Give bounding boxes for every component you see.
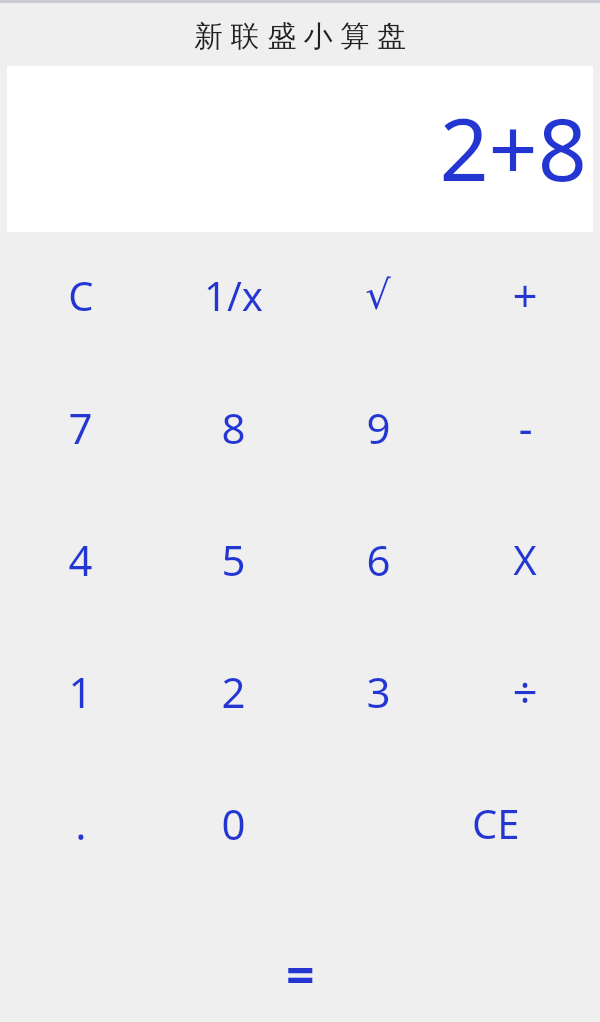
staticText: 3 [366,663,391,720]
staticText: 2+8 [439,89,587,206]
staticText: 5 [221,531,246,588]
button[interactable]: CE [450,791,600,855]
button[interactable]: 5 [161,527,306,591]
button[interactable]: 7 [0,395,161,459]
button[interactable]: 6 [306,527,450,591]
staticText: = [286,940,315,1008]
button[interactable]: 2+8 [7,66,593,232]
staticText: 9 [366,399,391,456]
button[interactable]: X [450,527,600,591]
button[interactable]: Minus [450,395,600,459]
staticText: 8 [221,399,246,456]
staticText: . [75,795,87,852]
staticText: 0 [221,795,246,852]
button[interactable]: 4 [0,527,161,591]
button[interactable]: 0 [161,791,306,855]
staticText: + [512,265,538,325]
staticText: 新 联 盛 小 算 盘 [194,15,406,55]
button[interactable]: 8 [161,395,306,459]
staticText: 4 [68,531,93,588]
staticText: 2 [221,663,246,720]
button[interactable]: 1/x [161,263,306,327]
staticText: 6 [366,531,391,588]
button[interactable]: Plus [450,263,600,327]
button[interactable]: Equals [220,940,380,1010]
button[interactable]: 9 [306,395,450,459]
button[interactable]: Square root [306,263,450,327]
staticText: 1 [68,663,93,720]
button[interactable]: C [0,263,161,327]
button[interactable]: Decimal point [0,791,161,855]
staticText: C [68,268,94,322]
staticText: √ [365,272,391,319]
button[interactable]: 3 [306,659,450,723]
staticText: 1/x [204,268,263,322]
button[interactable]: 1 [0,659,161,723]
staticText: CE [472,796,520,850]
staticText: ÷ [512,661,538,721]
button[interactable]: 2 [161,659,306,723]
staticText: - [518,397,533,457]
staticText: X [513,532,537,586]
staticText: 7 [68,399,93,456]
button[interactable]: Divide [450,659,600,723]
